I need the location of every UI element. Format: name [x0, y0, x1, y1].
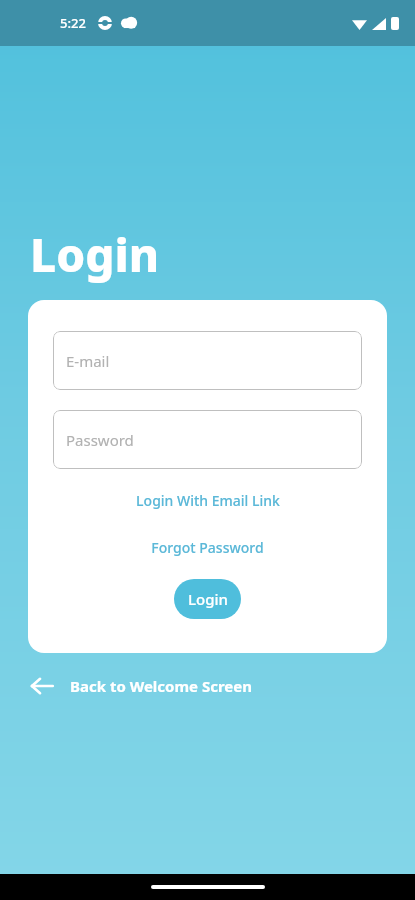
button[interactable]: Password: [53, 410, 362, 469]
button[interactable]: E-mail: [53, 331, 362, 390]
staticText: Login: [30, 223, 160, 286]
button[interactable]: Back: [30, 664, 252, 708]
button[interactable]: Forgot Password: [53, 538, 362, 557]
staticText: E-mail: [66, 351, 110, 371]
button[interactable]: Login With Email Link: [53, 491, 362, 510]
staticText: 5:22: [60, 14, 86, 32]
staticText: Forgot Password: [151, 538, 264, 557]
staticText: Back to Welcome Screen: [70, 676, 252, 696]
staticText: Login: [188, 589, 228, 609]
staticText: Login With Email Link: [136, 491, 280, 510]
other: Back: [30, 674, 54, 698]
button[interactable]: Login: [174, 579, 241, 619]
staticText: Password: [66, 430, 134, 450]
